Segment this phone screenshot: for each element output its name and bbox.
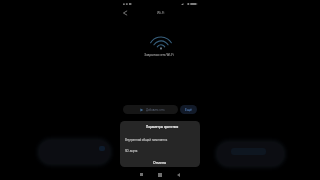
staticText: Отмена: [153, 160, 167, 165]
staticText: Внутренний общий накопитель: [125, 138, 168, 142]
staticText: Закрытая сеть Wi-Fi: [144, 53, 174, 57]
staticText: Wi‑Fi: [157, 11, 165, 15]
button[interactable]: Назад: [173, 170, 183, 179]
button[interactable]: Главный экран: [155, 170, 165, 179]
staticText: Добавить сеть: [146, 108, 165, 112]
staticText: SD-карта: [125, 149, 138, 153]
staticText: Ещё: [185, 107, 192, 112]
button[interactable]: Добавить сеть: [123, 105, 178, 114]
button[interactable]: SD-карта: [120, 147, 200, 157]
button[interactable]: Внутренний общий накопитель: [120, 136, 200, 146]
button[interactable]: Отмена: [150, 159, 170, 166]
staticText: Параметры хранения: [146, 125, 179, 129]
button[interactable]: Назад: [120, 8, 130, 18]
button[interactable]: Недавние приложения: [136, 170, 146, 179]
button[interactable]: Ещё: [180, 105, 197, 114]
